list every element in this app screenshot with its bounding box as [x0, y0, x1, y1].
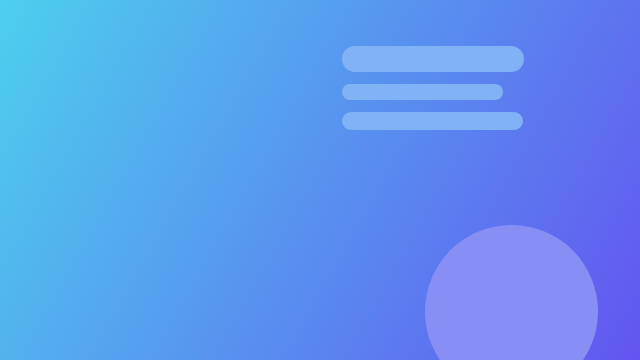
button[interactable]: Decorative accent: [425, 225, 598, 360]
button[interactable]: Subtitle placeholder: [342, 84, 503, 100]
button[interactable]: Body placeholder: [342, 112, 523, 130]
button[interactable]: Title placeholder: [342, 46, 524, 72]
